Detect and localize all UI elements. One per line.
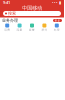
staticText: ••• ▮ xyxy=(52,0,61,5)
staticText: 办理 xyxy=(54,28,60,32)
staticText: 流量 xyxy=(17,28,23,32)
staticText: 9:41 xyxy=(3,0,10,5)
staticText: 业务办理 xyxy=(2,18,18,23)
staticText: 中国移动 xyxy=(22,5,42,11)
staticText: 更多 xyxy=(54,19,60,22)
staticText: 积分 xyxy=(41,28,47,32)
staticText: 话费 xyxy=(4,28,10,32)
staticText: 套餐 xyxy=(29,28,35,32)
staticText: 搜索 xyxy=(8,11,16,16)
